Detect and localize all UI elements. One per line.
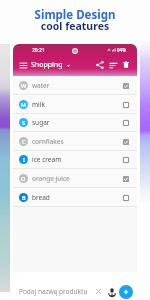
staticText: I: [23, 156, 25, 163]
button[interactable]: S: [13, 113, 137, 132]
staticText: Simple Design: [0, 7, 150, 23]
staticText: O: [21, 175, 26, 182]
button[interactable]: Toggle cornflakes: [121, 137, 131, 147]
staticText: Podaj nazwę produktu: [19, 287, 88, 296]
button[interactable]: Sort list: [108, 60, 118, 70]
button[interactable]: Delete list: [121, 60, 131, 70]
button[interactable]: Open menu: [18, 60, 29, 71]
staticText: S: [22, 119, 26, 126]
button[interactable]: C: [13, 132, 137, 151]
button[interactable]: I: [13, 150, 137, 169]
staticText: orange juice: [32, 174, 70, 183]
staticText: B: [22, 194, 26, 201]
staticText: sugar: [32, 118, 50, 127]
staticText: cool features: [0, 19, 150, 33]
staticText: M: [21, 101, 27, 108]
button[interactable]: Toggle ice cream: [121, 155, 131, 165]
staticText: W: [21, 82, 27, 89]
button[interactable]: Share list: [95, 60, 105, 70]
staticText: 20:21: [32, 47, 45, 54]
button[interactable]: B: [13, 188, 137, 207]
staticText: bread: [32, 193, 50, 202]
staticText: milk: [32, 100, 45, 109]
button[interactable]: Voice input: [106, 286, 117, 297]
button[interactable]: M: [13, 95, 137, 114]
staticText: C: [22, 138, 26, 145]
staticText: water: [32, 81, 50, 90]
button[interactable]: Toggle sugar: [121, 118, 131, 128]
button[interactable]: Add product: [119, 285, 133, 299]
button[interactable]: Toggle bread: [121, 193, 131, 203]
button[interactable]: Toggle orange juice: [121, 174, 131, 184]
staticText: 94%: [117, 47, 126, 53]
staticText: cornflakes: [32, 137, 64, 146]
staticText: ice cream: [32, 155, 62, 164]
staticText: Shopping: [31, 60, 63, 70]
button[interactable]: Toggle milk: [121, 100, 131, 110]
button[interactable]: Clear text: [94, 287, 103, 296]
button[interactable]: O: [13, 169, 137, 188]
button[interactable]: Toggle water: [121, 81, 131, 91]
button[interactable]: W: [13, 76, 137, 95]
